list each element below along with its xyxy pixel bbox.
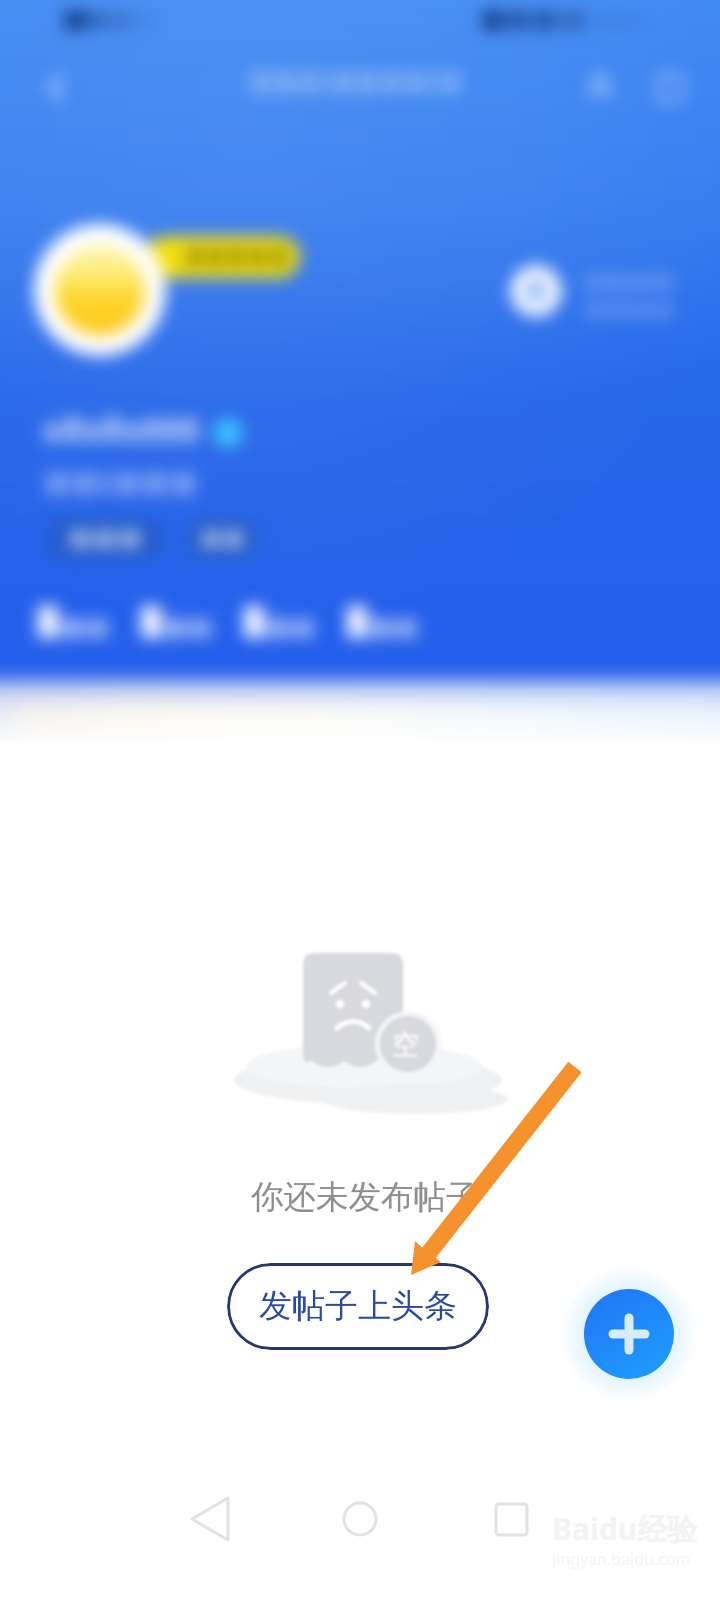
staticText: jingyan.baidu.com [552, 1548, 691, 1570]
staticText: 你还未发布帖子 [251, 1177, 479, 1218]
button[interactable]: Follows [30, 596, 114, 648]
staticText: 发帖子上头条 [259, 1285, 457, 1327]
button[interactable]: Page title [240, 58, 480, 118]
button[interactable]: Tag one [48, 518, 162, 560]
button[interactable]: Account [570, 58, 630, 118]
button[interactable]: Back [26, 58, 86, 118]
button[interactable]: Fans [135, 596, 219, 648]
staticText: Baidu经验 [552, 1508, 698, 1549]
button[interactable]: 发帖子上头条 [227, 1263, 489, 1350]
button[interactable]: Level badge [145, 236, 300, 278]
button[interactable]: Creator centre entry [504, 258, 700, 324]
button[interactable]: Visits [345, 596, 429, 648]
button[interactable]: Tag two [186, 518, 258, 560]
staticText: 空 [392, 1028, 419, 1062]
button[interactable]: Profile photo [34, 224, 166, 356]
button[interactable]: Recent apps [473, 1520, 551, 1598]
button[interactable]: Home [321, 1520, 399, 1598]
button[interactable]: Likes [240, 596, 324, 648]
button[interactable]: Add post [584, 1289, 674, 1379]
button[interactable]: More options [640, 58, 700, 118]
button[interactable]: Back [175, 1520, 253, 1598]
